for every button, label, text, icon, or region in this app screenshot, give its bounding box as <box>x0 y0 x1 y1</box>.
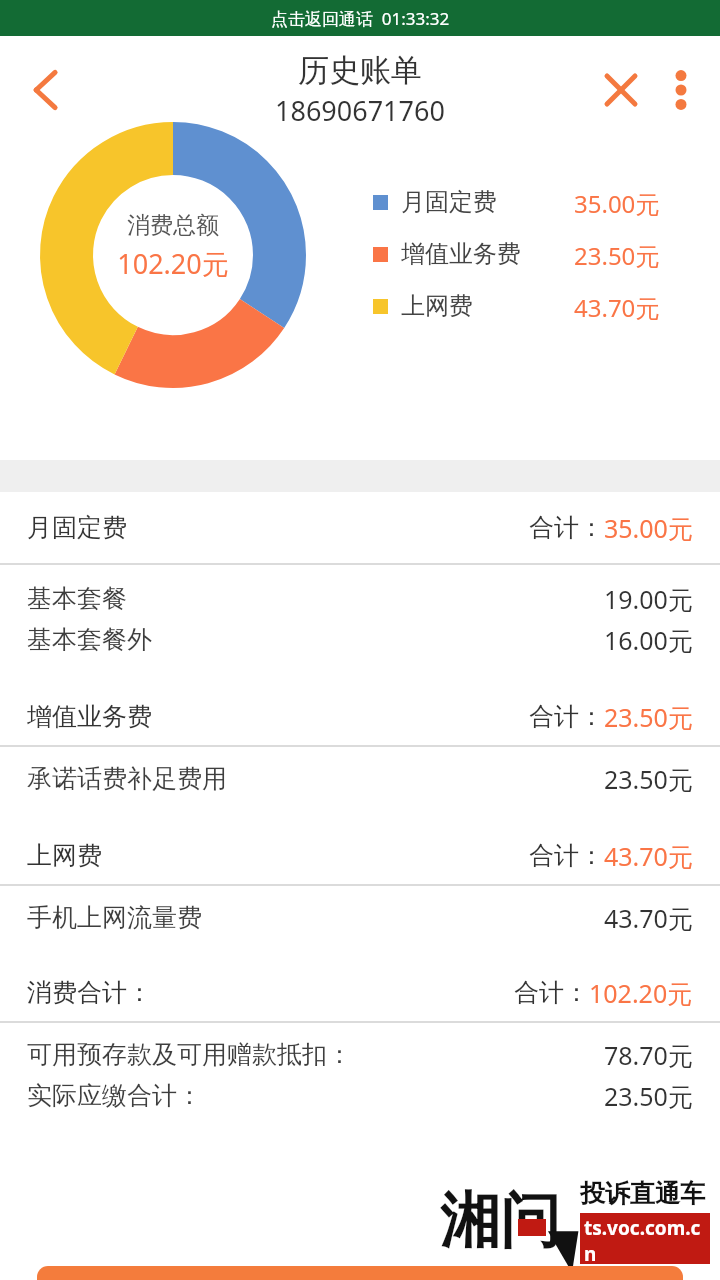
button[interactable]: 基本套餐外 <box>0 619 720 660</box>
staticText: 合计： <box>529 701 604 732</box>
staticText: 消费合计： <box>27 977 152 1008</box>
staticText: 历史账单 <box>298 51 422 90</box>
staticText: 19.00元 <box>604 582 693 616</box>
button[interactable]: 月固定费 <box>0 492 720 563</box>
button[interactable]: 上网费 <box>373 291 694 321</box>
staticText: 78.70元 <box>604 1038 693 1072</box>
staticText: 35.00元 <box>604 511 693 545</box>
button[interactable]: Back <box>0 36 92 143</box>
staticText: 上网费 <box>27 840 102 871</box>
staticText: 可用预存款及可用赠款抵扣： <box>27 1039 352 1070</box>
button[interactable]: 月固定费 <box>373 187 694 217</box>
staticText: 43.70元 <box>574 291 660 321</box>
button[interactable]: 消费合计： <box>0 964 720 1021</box>
staticText: 增值业务费 <box>27 701 152 732</box>
staticText: 湘问 <box>440 1183 560 1259</box>
button[interactable]: 实际应缴合计： <box>0 1075 720 1116</box>
staticText: 102.20元 <box>589 976 693 1010</box>
staticText: 43.70元 <box>604 901 693 935</box>
staticText: 18690671760 <box>275 92 445 129</box>
button[interactable]: 增值业务费 <box>373 239 694 269</box>
staticText: 消费总额 <box>127 211 219 240</box>
staticText: 23.50元 <box>604 762 693 796</box>
button[interactable]: 基本套餐 <box>0 578 720 619</box>
staticText: 16.00元 <box>604 623 693 657</box>
staticText: 102.20元 <box>117 245 229 282</box>
button[interactable]: 承诺话费补足费用 <box>0 758 720 799</box>
staticText: 合计： <box>514 977 589 1008</box>
staticText: ts.voc.com.cn <box>584 1215 706 1262</box>
staticText: 43.70元 <box>604 839 693 873</box>
staticText: 35.00元 <box>574 187 660 217</box>
button[interactable]: Submit <box>37 1266 683 1280</box>
button[interactable]: More options <box>653 36 709 143</box>
staticText: 投诉直通车 <box>580 1178 705 1209</box>
button[interactable]: 上网费 <box>0 827 720 884</box>
staticText: 月固定费 <box>27 512 127 543</box>
staticText: 增值业务费 <box>401 239 521 269</box>
staticText: 上网费 <box>401 291 473 321</box>
button[interactable]: 可用预存款及可用赠款抵扣： <box>0 1034 720 1075</box>
staticText: 点击返回通话 01:33:32 <box>271 7 450 30</box>
staticText: 合计： <box>529 840 604 871</box>
button[interactable]: 手机上网流量费 <box>0 897 720 938</box>
staticText: 实际应缴合计： <box>27 1080 202 1111</box>
staticText: 基本套餐外 <box>27 624 152 655</box>
staticText: 23.50元 <box>604 1079 693 1113</box>
button[interactable]: Close <box>589 36 653 143</box>
staticText: 23.50元 <box>574 239 660 269</box>
staticText: 承诺话费补足费用 <box>27 763 227 794</box>
staticText: 23.50元 <box>604 700 693 734</box>
staticText: 月固定费 <box>401 187 497 217</box>
staticText: 基本套餐 <box>27 583 127 614</box>
staticText: 手机上网流量费 <box>27 902 202 933</box>
staticText: 合计： <box>529 512 604 543</box>
button[interactable]: 增值业务费 <box>0 688 720 745</box>
